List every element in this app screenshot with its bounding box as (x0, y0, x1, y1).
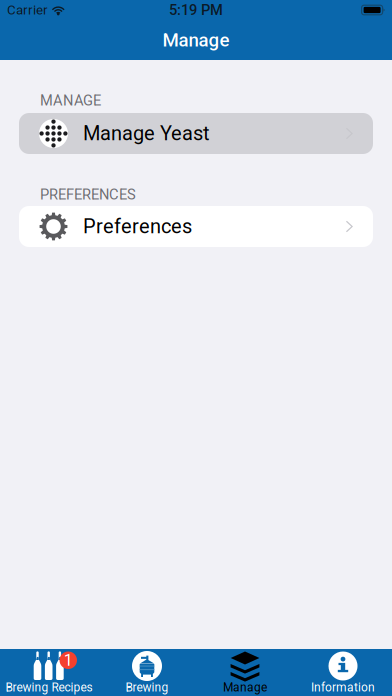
staticText: PREFERENCES (40, 186, 136, 203)
button[interactable]: Manage (196, 649, 294, 696)
button[interactable]: Brewing (98, 649, 196, 696)
staticText: Brewing Recipes (5, 680, 92, 695)
staticText: Manage (162, 29, 229, 51)
staticText: Manage Yeast (83, 122, 210, 145)
staticText: MANAGE (40, 92, 101, 109)
staticText: Carrier (7, 2, 48, 18)
staticText: Information (311, 680, 375, 695)
staticText: 1 (64, 651, 73, 670)
button[interactable]: Manage Yeast (19, 113, 373, 154)
button[interactable]: Preferences (19, 206, 373, 247)
staticText: Manage (223, 680, 267, 695)
staticText: Preferences (83, 215, 192, 238)
staticText: 5:19 PM (169, 1, 223, 19)
button[interactable]: Information (294, 649, 392, 696)
staticText: Brewing (125, 680, 168, 695)
button[interactable]: 1 (0, 649, 98, 696)
